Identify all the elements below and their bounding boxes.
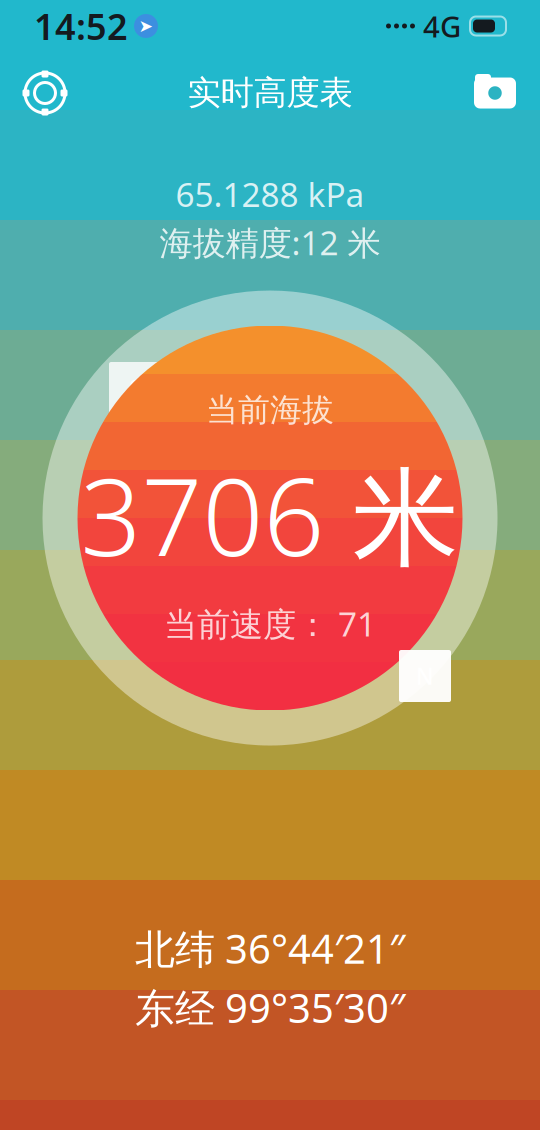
staticText: 北纬 36°44′21″ [135, 922, 405, 975]
button[interactable]: Camera [466, 64, 524, 122]
staticText: 东经 99°35′30″ [135, 981, 405, 1034]
button[interactable]: Settings [16, 64, 74, 122]
staticText: 海拔精度:12 米 [159, 220, 380, 265]
staticText: 3706 米 [80, 444, 459, 585]
staticText: 实时高度表 [187, 72, 352, 113]
staticText: ➤ [138, 16, 153, 36]
staticText: 当前海拔 [206, 390, 334, 430]
staticText: 14:52 [34, 2, 128, 50]
staticText: 当前速度： 71 [164, 601, 376, 646]
staticText: 4G [423, 6, 461, 45]
staticText: 65.1288 kPa [175, 172, 364, 216]
staticText: S [129, 373, 141, 403]
